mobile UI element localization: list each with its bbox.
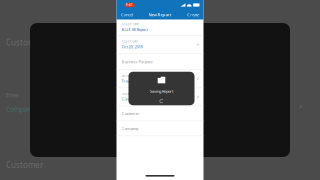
staticText: Company [121,126,138,131]
staticText: Create [187,12,199,17]
staticText: Report name [121,22,139,26]
staticText: New Report [148,12,171,17]
staticText: Report Date [121,40,138,43]
button[interactable]: Create [185,10,201,19]
button[interactable]: Expense Type [116,70,203,88]
staticText: Customer [121,111,139,116]
staticText: Cancel [121,12,133,17]
button[interactable]: Company [116,121,203,136]
staticText: Expense Type [121,74,139,77]
staticText: ALLE 38 Report [121,27,147,32]
staticText: Consulting [121,96,139,102]
button[interactable]: Cancel [119,10,135,19]
button[interactable]: Customer [116,106,203,121]
button[interactable]: Report Date [116,35,203,53]
button[interactable]: Report name [116,19,203,35]
staticText: Travel [121,78,132,83]
staticText: Customer [6,37,43,48]
staticText: Department [121,92,137,96]
button[interactable]: Department [116,88,203,106]
staticText: Saving Report [150,88,173,94]
staticText: 9:41 [126,3,133,7]
staticText: Enter [6,92,19,99]
staticText: Oct 20, 2018 [121,44,142,49]
staticText: Company [6,105,35,114]
button[interactable]: Business Purpose [116,54,203,69]
staticText: Business Purpose [121,59,152,64]
staticText: Customer [6,160,43,170]
